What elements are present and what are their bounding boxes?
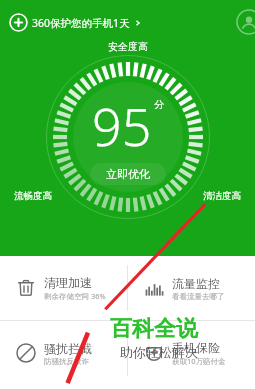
button[interactable]: 清理加速: [0, 256, 127, 320]
staticText: 分: [154, 98, 164, 111]
staticText: 清洁度高: [203, 190, 241, 202]
staticText: 手机保险: [172, 340, 220, 355]
staticText: 安全度高: [108, 40, 148, 53]
button[interactable]: 手机保险: [128, 321, 255, 385]
staticText: 清理加速: [44, 275, 92, 290]
staticText: 助你轻松解决: [120, 344, 198, 360]
staticText: 百科全说: [110, 315, 198, 343]
button[interactable]: Account: [237, 10, 255, 34]
button[interactable]: 流量监控: [128, 256, 255, 320]
button[interactable]: 360保护您的手机1天: [8, 12, 144, 33]
staticText: 看看流量去哪了: [172, 292, 225, 301]
button[interactable]: 立即优化: [90, 163, 166, 185]
staticText: 360保护您的手机1天: [32, 16, 130, 30]
staticText: 剩余存储空间 36%: [44, 291, 106, 301]
staticText: 防骚扰反欺诈: [44, 357, 89, 366]
staticText: 流畅度高: [14, 190, 52, 202]
button[interactable]: 骚扰拦截: [0, 321, 127, 385]
staticText: 骚扰拦截: [44, 341, 92, 356]
staticText: 95: [92, 90, 152, 161]
staticText: 流量监控: [172, 276, 220, 291]
staticText: 获取10万赔付金: [172, 356, 226, 366]
staticText: 立即优化: [106, 167, 150, 181]
